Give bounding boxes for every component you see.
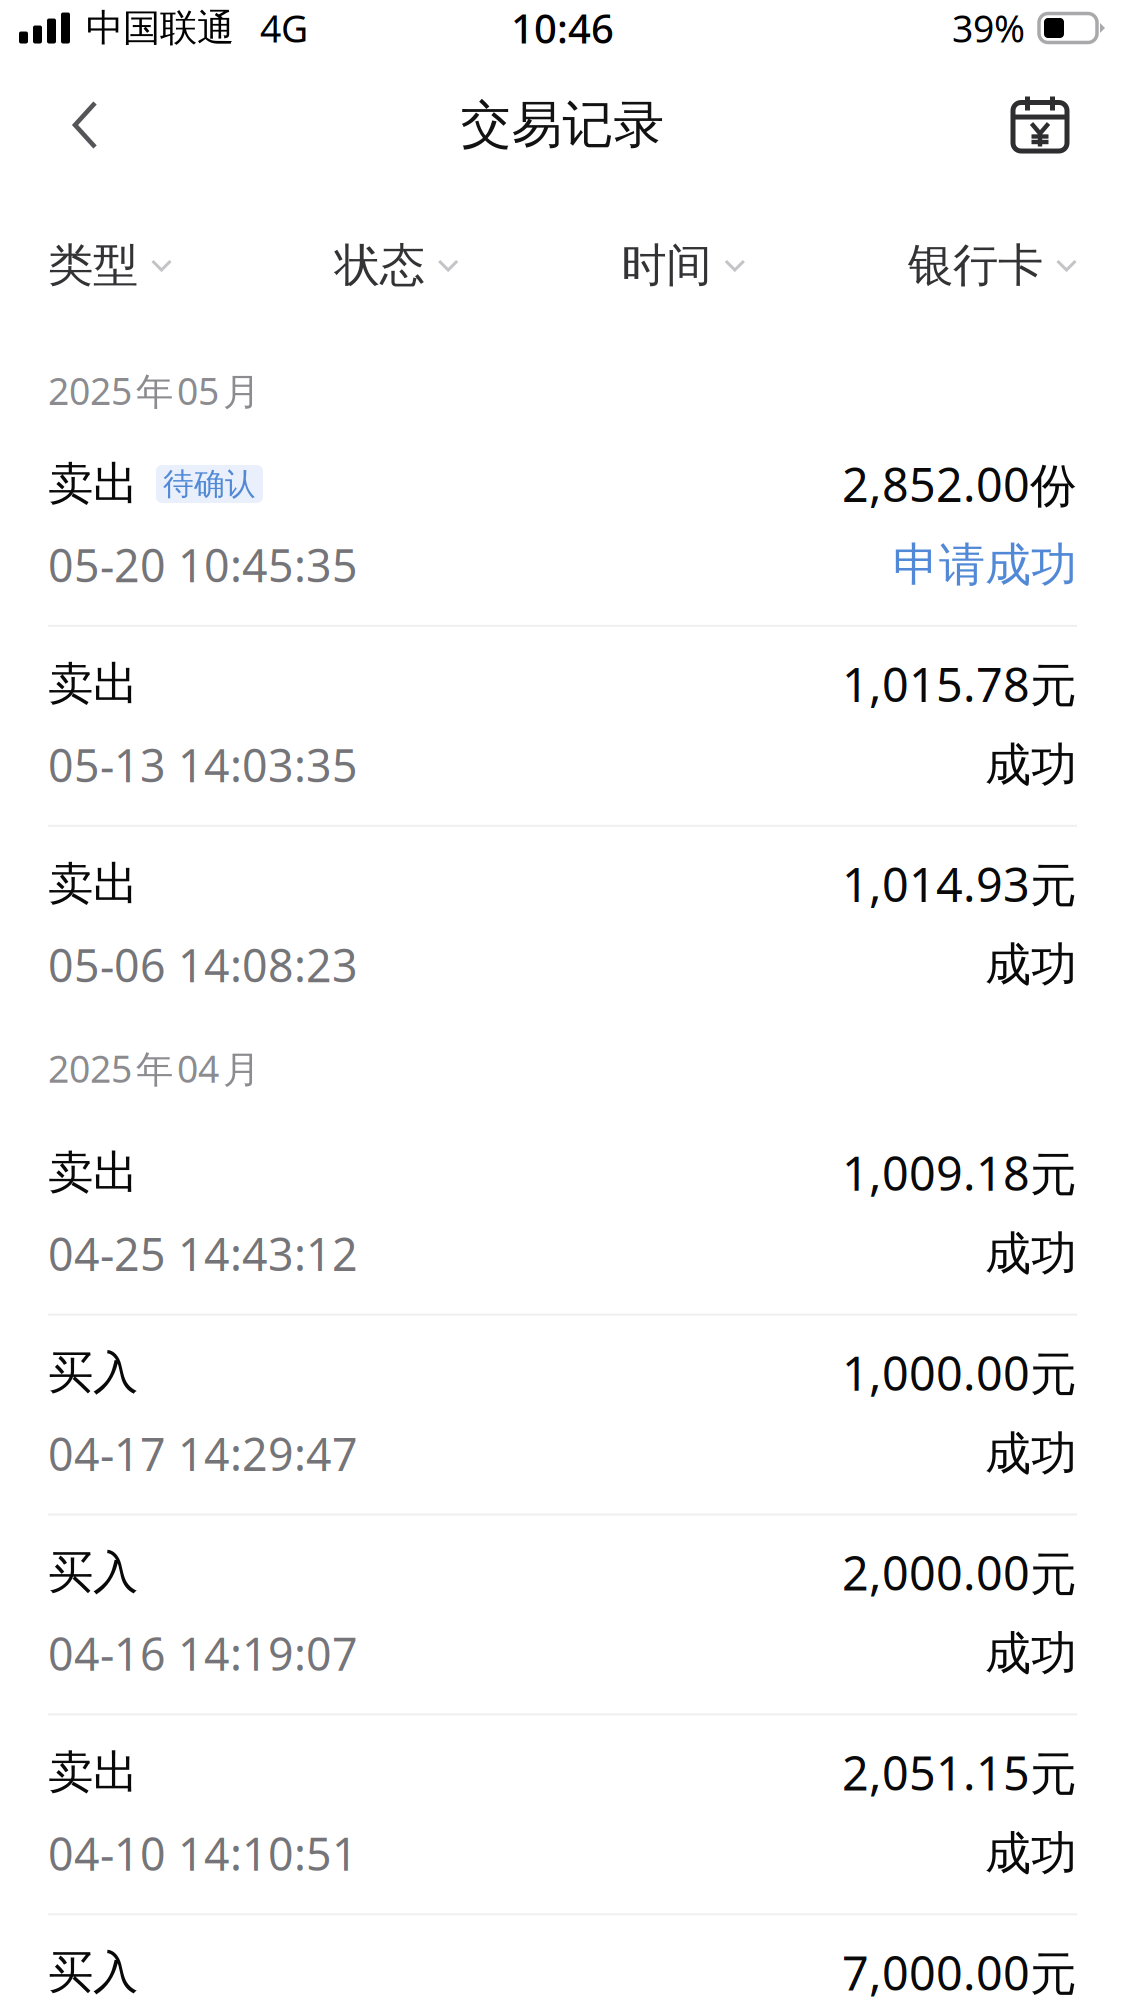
staticText: 申请成功 <box>893 536 1077 594</box>
staticText: 类型 <box>48 237 138 294</box>
staticText: 04-25 14:43:12 <box>48 1223 358 1284</box>
staticText: 2,051.15元 <box>842 1741 1077 1804</box>
button[interactable]: 时间 <box>621 220 745 310</box>
staticText: 成功 <box>985 1425 1077 1482</box>
staticText: 05-06 14:08:23 <box>48 934 358 995</box>
staticText: 2,000.00元 <box>842 1541 1077 1604</box>
staticText: 中国联通 <box>86 4 234 51</box>
staticText: 1,009.18元 <box>842 1141 1077 1204</box>
staticText: 2,852.00份 <box>842 452 1077 516</box>
staticText: 2025 年 05 月 <box>48 365 260 416</box>
staticText: 卖出 <box>48 855 138 912</box>
staticText: 2025 年 04 月 <box>48 1043 260 1094</box>
staticText: 成功 <box>985 736 1077 794</box>
staticText: 4G <box>260 3 308 53</box>
staticText: 10:46 <box>511 1 614 55</box>
button[interactable]: 卖出 <box>0 827 1125 1025</box>
button[interactable]: 买入 <box>0 1515 1125 1713</box>
staticText: 买入 <box>48 1944 138 2001</box>
button[interactable]: 银行卡 <box>908 220 1077 310</box>
staticText: 时间 <box>621 237 711 294</box>
staticText: 04-10 14:10:51 <box>48 1823 358 1884</box>
staticText: 卖出 <box>48 655 138 712</box>
staticText: 状态 <box>335 237 425 294</box>
staticText: 1,015.78元 <box>842 652 1077 716</box>
button[interactable]: 返回 <box>36 75 134 175</box>
staticText: 1,014.93元 <box>842 852 1077 916</box>
button[interactable]: 卖出 <box>0 427 1125 625</box>
staticText: 银行卡 <box>908 237 1043 294</box>
staticText: 1,000.00元 <box>842 1341 1077 1404</box>
staticText: 39% <box>952 3 1025 53</box>
staticText: 卖出 <box>48 455 138 512</box>
button[interactable]: 类型 <box>48 220 172 310</box>
staticText: 买入 <box>48 1544 138 1601</box>
button[interactable]: 卖出 <box>0 1116 1125 1314</box>
staticText: 7,000.00元 <box>842 1940 1077 2001</box>
staticText: 05-13 14:03:35 <box>48 734 358 795</box>
staticText: 成功 <box>985 936 1077 994</box>
button[interactable]: 买入 <box>0 1316 1125 1513</box>
button[interactable]: 卖出 <box>0 1715 1125 1913</box>
staticText: 04-16 14:19:07 <box>48 1623 358 1684</box>
staticText: 04-17 14:29:47 <box>48 1423 358 1484</box>
staticText: 成功 <box>985 1225 1077 1283</box>
staticText: 成功 <box>985 1624 1077 1682</box>
button[interactable]: 卖出 <box>0 627 1125 825</box>
staticText: 卖出 <box>48 1144 138 1201</box>
button[interactable]: 按月份筛选 <box>991 75 1089 175</box>
staticText: 待确认 <box>163 465 256 503</box>
button[interactable]: 状态 <box>335 220 459 310</box>
staticText: 成功 <box>985 1824 1077 1882</box>
staticText: 交易记录 <box>460 93 664 157</box>
staticText: 买入 <box>48 1344 138 1401</box>
staticText: 卖出 <box>48 1744 138 1801</box>
button[interactable]: 买入 <box>0 1915 1125 2001</box>
staticText: 05-20 10:45:35 <box>48 535 358 595</box>
